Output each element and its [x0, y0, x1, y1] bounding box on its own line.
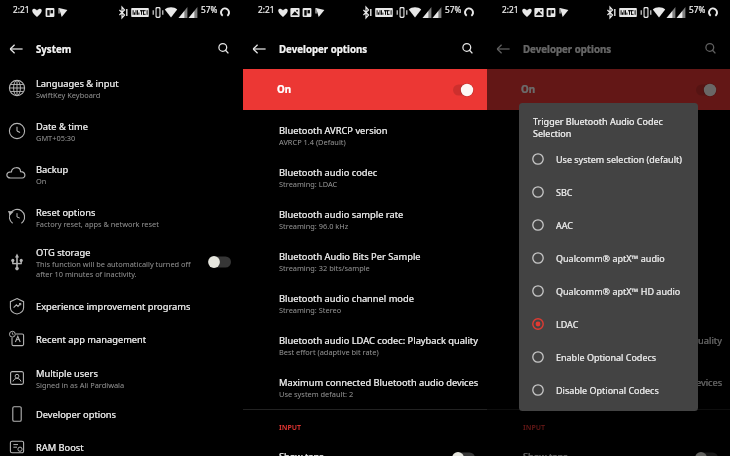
staticText: LDAC [556, 318, 579, 330]
button[interactable]: Back [3, 36, 29, 62]
button[interactable]: SBC [519, 179, 698, 205]
button[interactable]: Use system selection (default) [519, 146, 698, 172]
staticText: Streaming: 32 bits/sample [523, 263, 614, 273]
staticText: Selection [533, 127, 572, 139]
button[interactable]: Bluetooth Audio Bits Per Sample [243, 246, 487, 276]
staticText: On [521, 83, 536, 96]
button[interactable]: Toggle developer options [694, 81, 718, 99]
staticText: Streaming: 96.0 kHz [523, 221, 593, 231]
button[interactable]: Back [246, 36, 272, 62]
button[interactable]: Enable Optional Codecs [519, 344, 698, 370]
staticText: Bluetooth audio LDAC codec: Playback qua… [523, 334, 722, 347]
staticText: System [36, 43, 72, 56]
button[interactable]: Bluetooth AVRCP version [243, 120, 487, 150]
staticText: Bluetooth AVRCP version [279, 124, 388, 137]
button[interactable]: On [243, 69, 487, 110]
staticText: AVRCP 1.4 (Default) [279, 137, 346, 147]
staticText: INPUT [523, 423, 546, 433]
staticText: Developer options [36, 408, 116, 421]
staticText: Maximum connected Bluetooth audio device… [523, 376, 723, 389]
button[interactable]: Search [454, 36, 480, 62]
button[interactable]: Date & time [0, 116, 243, 146]
button[interactable]: Search [697, 36, 723, 62]
button[interactable]: Maximum connected Bluetooth audio device… [243, 372, 487, 402]
staticText: Signed in as Ali Pardiwala [36, 380, 125, 390]
button[interactable]: Multiple users [0, 363, 243, 393]
button[interactable]: Bluetooth AVRCP version [487, 120, 730, 150]
button[interactable]: Bluetooth audio sample rate [243, 204, 487, 234]
button[interactable]: Experience improvement programs [0, 292, 243, 320]
staticText: 2:21 [502, 4, 519, 15]
staticText: GMT+05:30 [36, 133, 76, 143]
staticText: 57% [689, 4, 706, 15]
staticText: Maximum connected Bluetooth audio device… [279, 376, 479, 389]
staticText: Best effort (adaptive bit rate) [279, 347, 379, 357]
button[interactable]: LDAC [519, 311, 698, 337]
button[interactable]: Bluetooth audio LDAC codec: Playback qua… [243, 330, 487, 360]
button[interactable]: Qualcomm® aptX™ audio [519, 245, 698, 271]
staticText: Bluetooth audio codec [279, 166, 378, 179]
staticText: On [277, 83, 292, 96]
staticText: Developer options [523, 43, 612, 56]
staticText: Bluetooth Audio Bits Per Sample [279, 250, 421, 263]
button[interactable]: Back [490, 36, 516, 62]
button[interactable]: Show taps [243, 446, 487, 456]
button[interactable]: Toggle OTG storage [208, 253, 232, 271]
staticText: Bluetooth audio LDAC codec: Playback qua… [279, 334, 478, 347]
staticText: Bluetooth Audio Bits Per Sample [523, 250, 665, 263]
button[interactable]: Bluetooth audio channel mode [243, 288, 487, 318]
staticText: Streaming: Stereo [279, 305, 342, 315]
button[interactable]: Backup [0, 159, 243, 189]
button[interactable]: Recent app management [0, 325, 243, 353]
staticText: Recent app management [36, 333, 147, 346]
staticText: 57% [445, 4, 462, 15]
button[interactable]: Reset options [0, 202, 243, 232]
button[interactable]: Toggle show taps [452, 449, 476, 456]
button[interactable]: Toggle developer options [451, 81, 475, 99]
button[interactable]: Bluetooth audio codec [487, 162, 730, 192]
button[interactable]: Bluetooth audio channel mode [487, 288, 730, 318]
button[interactable]: AAC [519, 212, 698, 238]
button[interactable]: Disable Optional Codecs [519, 377, 698, 403]
button[interactable]: RAM Boost [0, 433, 243, 456]
button[interactable]: Bluetooth audio LDAC codec: Playback qua… [487, 330, 730, 360]
staticText: Use system default: 2 [523, 389, 598, 399]
button[interactable]: Bluetooth Audio Bits Per Sample [487, 246, 730, 276]
staticText: Enable Optional Codecs [556, 351, 657, 363]
staticText: Bluetooth audio sample rate [523, 208, 648, 221]
staticText: Streaming: 32 bits/sample [279, 263, 370, 273]
staticText: AAC [556, 219, 574, 231]
staticText: 2:21 [258, 4, 275, 15]
button[interactable]: OTG storage [0, 243, 243, 281]
staticText: Trigger Bluetooth Audio Codec [533, 115, 663, 127]
button[interactable]: On [487, 69, 730, 110]
staticText: Multiple users [36, 367, 98, 380]
staticText: Date & time [36, 120, 88, 133]
staticText: Qualcomm® aptX™ HD audio [556, 285, 681, 297]
staticText: Use system default: 2 [279, 389, 354, 399]
button[interactable]: Bluetooth audio codec [243, 162, 487, 192]
staticText: Bluetooth audio sample rate [279, 208, 404, 221]
staticText: Streaming: 96.0 kHz [279, 221, 349, 231]
staticText: SBC [556, 186, 573, 198]
button[interactable]: Show taps [487, 446, 730, 456]
button[interactable]: Toggle show taps [695, 449, 719, 456]
button[interactable]: Developer options [0, 400, 243, 428]
staticText: Disable Optional Codecs [556, 384, 659, 396]
button[interactable]: Search [210, 36, 236, 62]
button[interactable]: Languages & input [0, 73, 243, 103]
button[interactable]: Bluetooth audio sample rate [487, 204, 730, 234]
staticText: Show taps [279, 450, 324, 456]
staticText: Factory reset, apps & network reset [36, 219, 159, 229]
staticText: Reset options [36, 206, 96, 219]
button[interactable]: Maximum connected Bluetooth audio device… [487, 372, 730, 402]
staticText: OTG storage [36, 246, 91, 259]
staticText: INPUT [279, 423, 302, 433]
button[interactable]: Qualcomm® aptX™ HD audio [519, 278, 698, 304]
staticText: On [36, 176, 47, 186]
staticText: Streaming: LDAC [523, 179, 582, 189]
staticText: Best effort (adaptive bit rate) [523, 347, 623, 357]
